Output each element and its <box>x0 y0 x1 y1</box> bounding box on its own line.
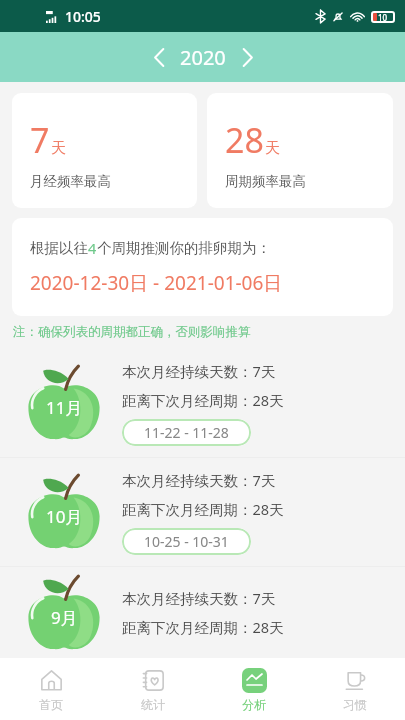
button[interactable]: 根据以往 <box>12 218 393 316</box>
staticText: 分析 <box>242 697 266 712</box>
staticText: 月经频率最高 <box>30 173 111 190</box>
button[interactable]: 28 <box>207 93 393 208</box>
staticText: 根据以往 <box>30 239 88 257</box>
staticText: 天 <box>265 139 280 158</box>
staticText: 距离下次月经周期：28天 <box>122 499 284 519</box>
staticText: 统计 <box>141 697 165 712</box>
staticText: 周期频率最高 <box>225 173 306 190</box>
button[interactable]: 10-25 - 10-31 <box>122 528 251 555</box>
staticText: 11-22 - 11-28 <box>144 423 229 442</box>
staticText: 本次月经持续天数：7天 <box>122 588 276 608</box>
staticText: 距离下次月经周期：28天 <box>122 390 284 410</box>
staticText: 10:05 <box>65 7 101 26</box>
staticText: 习惯 <box>343 697 367 712</box>
staticText: 2020 <box>180 44 226 71</box>
staticText: 11月 <box>46 396 83 419</box>
staticText: 7 <box>30 117 50 163</box>
staticText: 10 <box>378 12 388 23</box>
button[interactable]: 7 <box>12 93 197 208</box>
button[interactable]: 11-22 - 11-28 <box>122 419 251 446</box>
staticText: 10-25 - 10-31 <box>144 532 229 551</box>
staticText: 本次月经持续天数：7天 <box>122 361 276 381</box>
staticText: 10月 <box>46 505 83 528</box>
staticText: 注：确保列表的周期都正确，否则影响推算 <box>13 324 251 340</box>
staticText: 本次月经持续天数：7天 <box>122 470 276 490</box>
button[interactable]: 10月 <box>0 458 405 566</box>
staticText: 9月 <box>51 606 78 629</box>
staticText: 距离下次月经周期：28天 <box>122 617 284 637</box>
button[interactable]: Previous year <box>144 42 174 72</box>
staticText: 2020-12-30日 - 2021-01-06日 <box>30 270 283 296</box>
staticText: 4 <box>88 238 97 258</box>
button[interactable]: 分析 <box>203 658 304 720</box>
button[interactable]: Next year <box>232 42 262 72</box>
button[interactable]: 习惯 <box>304 658 405 720</box>
staticText: 首页 <box>39 697 63 712</box>
staticText: 天 <box>51 139 66 158</box>
button[interactable]: 首页 <box>0 658 102 720</box>
button[interactable]: 统计 <box>102 658 203 720</box>
staticText: 个周期推测你的排卵期为： <box>97 239 271 257</box>
button[interactable]: 9月 <box>0 567 405 658</box>
button[interactable]: 11月 <box>0 349 405 457</box>
staticText: 28 <box>225 117 264 163</box>
